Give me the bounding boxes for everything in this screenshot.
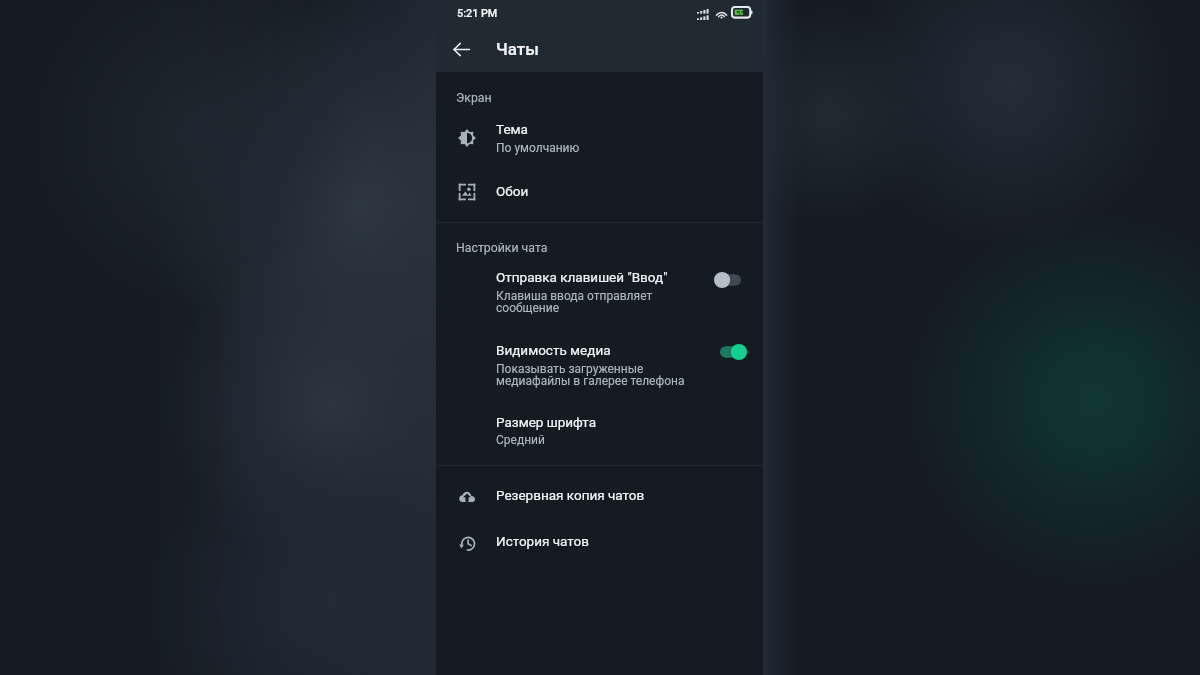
staticText: сообщение <box>496 301 560 315</box>
staticText: Клавиша ввода отправляет <box>496 289 653 303</box>
staticText: Настройки чата <box>456 241 548 255</box>
staticText: Тема <box>496 121 528 137</box>
staticText: По умолчанию <box>496 141 580 155</box>
staticText: медиафайлы в галерее телефона <box>496 374 685 388</box>
staticText: 55 <box>736 9 746 18</box>
staticText: Чаты <box>496 39 539 59</box>
button[interactable] <box>436 172 763 212</box>
staticText: История чатов <box>496 533 589 549</box>
staticText: Средний <box>496 433 545 447</box>
staticText: Показывать загруженные <box>496 362 644 376</box>
staticText: 5:21 PM <box>457 7 498 20</box>
staticText: Экран <box>456 91 492 105</box>
staticText: Видимость медиа <box>496 342 611 358</box>
staticText: Резервная копия чатов <box>496 487 645 503</box>
staticText: Обои <box>496 183 529 199</box>
button[interactable] <box>436 408 763 456</box>
staticText: Отправка клавишей "Ввод" <box>496 269 668 285</box>
button[interactable] <box>436 524 763 564</box>
button[interactable] <box>436 112 763 162</box>
button[interactable]: Toggle on <box>720 343 747 361</box>
staticText: Размер шрифта <box>496 414 597 430</box>
button[interactable]: Back <box>449 37 473 61</box>
button[interactable] <box>436 262 763 324</box>
button[interactable]: Toggle off <box>714 271 741 289</box>
button[interactable] <box>436 478 763 518</box>
button[interactable] <box>436 334 763 396</box>
